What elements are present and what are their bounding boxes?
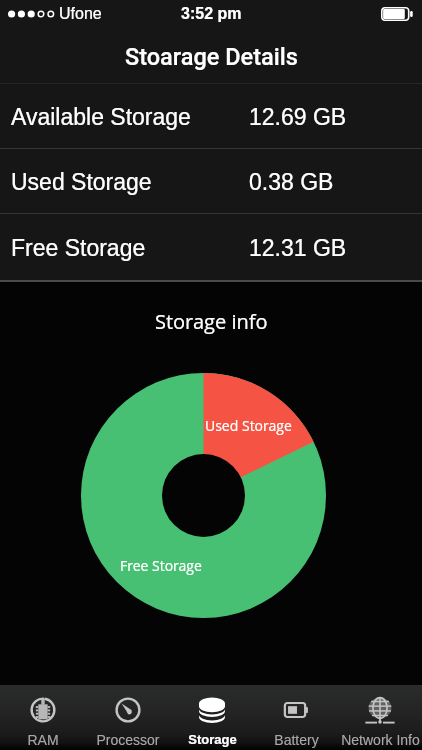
button[interactable]: Available Storage bbox=[0, 84, 422, 149]
staticText: Storage bbox=[188, 732, 237, 747]
staticText: Processor bbox=[96, 732, 160, 748]
button[interactable]: Network Info bbox=[338, 685, 422, 750]
button[interactable]: Used Storage bbox=[0, 149, 422, 214]
staticText: Storage info bbox=[155, 308, 268, 335]
staticText: Ufone bbox=[59, 5, 102, 23]
staticText: Available Storage bbox=[11, 104, 191, 130]
button[interactable]: Processor bbox=[85, 685, 170, 750]
button[interactable]: Free Storage bbox=[0, 214, 422, 282]
button[interactable]: RAM bbox=[0, 685, 85, 750]
staticText: Network Info bbox=[341, 732, 420, 748]
staticText: Used Storage bbox=[11, 169, 152, 195]
button[interactable]: Battery bbox=[254, 685, 338, 750]
staticText: 0.38 GB bbox=[249, 169, 334, 195]
staticText: 3:52 pm bbox=[181, 5, 242, 23]
staticText: Battery bbox=[274, 732, 319, 748]
staticText: Used Storage bbox=[205, 416, 292, 435]
staticText: RAM bbox=[27, 732, 59, 748]
staticText: Stoarage Details bbox=[125, 43, 298, 71]
button[interactable]: Storage bbox=[170, 685, 254, 750]
staticText: Free Storage bbox=[120, 556, 202, 575]
staticText: 12.31 GB bbox=[249, 235, 347, 261]
staticText: 12.69 GB bbox=[249, 104, 347, 130]
staticText: Free Storage bbox=[11, 235, 146, 261]
